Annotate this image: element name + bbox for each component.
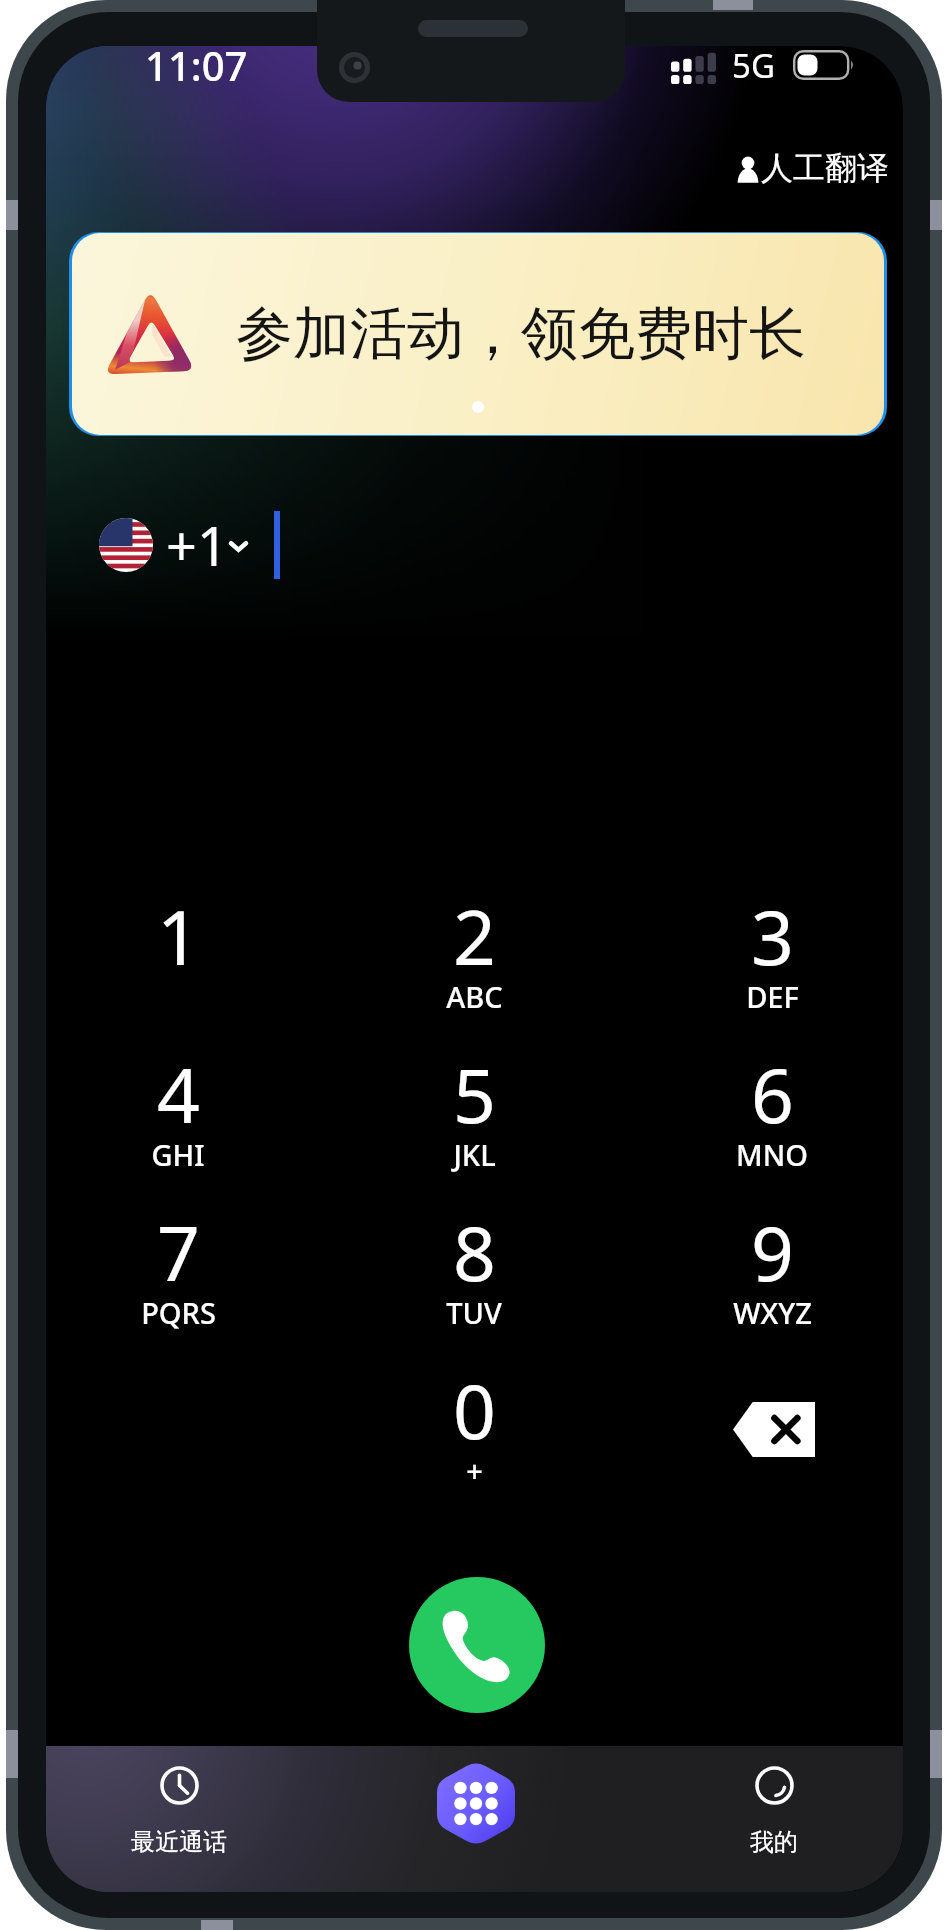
button[interactable]: 5 (354, 1040, 594, 1198)
button[interactable]: 8 (354, 1198, 594, 1356)
staticText: 1 (157, 885, 200, 987)
staticText: 5G (732, 46, 775, 88)
button[interactable]: 1 (58, 882, 298, 1040)
button[interactable]: 6 (652, 1040, 892, 1198)
staticText: JKL (453, 1135, 496, 1174)
staticText: 0 (453, 1359, 496, 1461)
staticText: 8 (453, 1201, 496, 1303)
staticText: 9 (751, 1201, 794, 1303)
staticText: 11:07 (145, 46, 248, 92)
staticText: 参加活动，领免费时长 (236, 298, 806, 370)
button[interactable]: 9 (652, 1198, 892, 1356)
staticText: 6 (751, 1043, 794, 1145)
staticText: WXYZ (733, 1293, 812, 1332)
button[interactable]: Keypad (437, 1761, 515, 1846)
staticText: +1 (166, 508, 228, 582)
staticText: MNO (736, 1135, 808, 1174)
staticText: 我的 (750, 1827, 798, 1857)
staticText: 2 (453, 885, 496, 987)
staticText: DEF (746, 977, 799, 1016)
button[interactable]: 最近通话 (89, 1766, 269, 1857)
staticText: ABC (446, 977, 503, 1016)
button[interactable]: 参加活动，领免费时长 (72, 233, 884, 435)
button[interactable]: 7 (58, 1198, 298, 1356)
staticText: 7 (157, 1201, 200, 1303)
button[interactable]: 0 (354, 1356, 594, 1514)
button[interactable]: +1 (99, 500, 248, 590)
button[interactable]: 人工翻译 (729, 140, 897, 196)
staticText: + (466, 1451, 483, 1490)
staticText: 最近通话 (131, 1827, 227, 1857)
button[interactable]: Call (409, 1577, 545, 1713)
staticText: 4 (157, 1043, 200, 1145)
staticText: TUV (446, 1293, 502, 1332)
staticText: GHI (151, 1135, 205, 1174)
staticText: 人工翻译 (761, 148, 889, 188)
button[interactable]: 4 (58, 1040, 298, 1198)
staticText: PQRS (141, 1293, 216, 1332)
button[interactable]: 2 (354, 882, 594, 1040)
button[interactable]: 我的 (684, 1766, 864, 1857)
button[interactable]: 3 (652, 882, 892, 1040)
staticText: 5 (453, 1043, 496, 1145)
staticText: 3 (751, 885, 794, 987)
button[interactable]: Delete (652, 1356, 892, 1514)
